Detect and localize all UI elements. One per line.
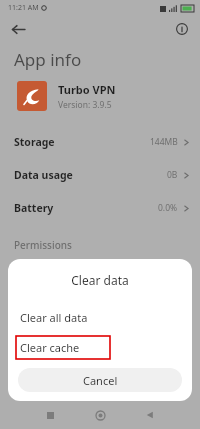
staticText: Clear all data — [20, 310, 88, 325]
button[interactable]: Clear all data — [8, 304, 192, 330]
staticText: Cancel — [83, 373, 118, 388]
button[interactable]: Storage — [0, 125, 200, 158]
button[interactable]: App details — [171, 18, 193, 40]
staticText: Storage — [14, 135, 55, 149]
staticText: Permissions — [14, 238, 72, 252]
button[interactable]: Battery — [0, 191, 200, 224]
staticText: Battery — [14, 201, 54, 215]
button[interactable]: Clear cache — [16, 336, 110, 359]
button[interactable]: Cancel — [18, 368, 182, 392]
button[interactable]: Back — [6, 17, 30, 41]
button[interactable]: Recents — [40, 405, 60, 425]
staticText: 11:21 AM — [8, 3, 39, 13]
staticText: 0B — [167, 169, 178, 181]
button[interactable]: Home — [90, 405, 110, 425]
button[interactable]: Data usage — [0, 158, 200, 191]
staticText: 144MB — [150, 136, 178, 148]
staticText: Turbo VPN — [58, 82, 116, 97]
staticText: Clear cache — [20, 340, 80, 355]
staticText: Clear data — [8, 272, 192, 288]
staticText: Version: 3.9.5 — [58, 99, 112, 111]
staticText: Data usage — [14, 168, 73, 182]
button[interactable]: Back — [140, 405, 160, 425]
staticText: 0.0% — [158, 202, 178, 214]
staticText: App info — [14, 48, 82, 71]
